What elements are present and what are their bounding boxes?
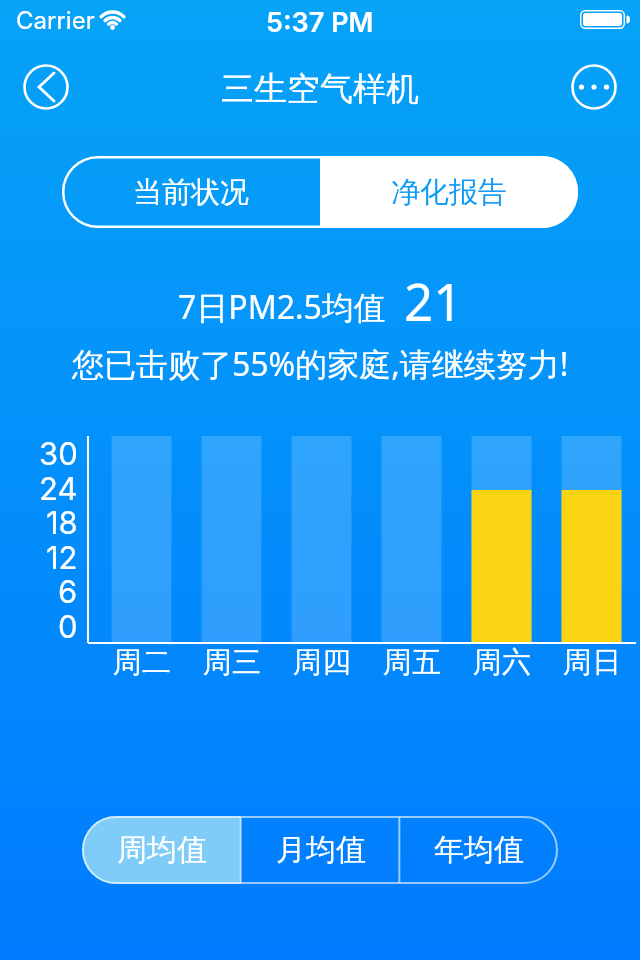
staticText: 您已击败了55%的家庭,请继续努力!: [72, 342, 569, 386]
staticText: 24: [39, 470, 78, 508]
button[interactable]: 净化报告: [320, 156, 578, 228]
staticText: 18: [46, 504, 78, 542]
staticText: 月均值: [276, 831, 366, 869]
staticText: 周三: [203, 644, 261, 681]
staticText: 12: [46, 539, 78, 577]
button[interactable]: 月均值: [241, 816, 400, 884]
staticText: 周四: [293, 644, 351, 681]
staticText: 净化报告: [391, 174, 507, 211]
staticText: 周六: [473, 644, 531, 681]
staticText: 6: [58, 573, 78, 611]
staticText: 7日PM2.5均值: [178, 285, 386, 329]
staticText: 周均值: [117, 831, 207, 869]
button[interactable]: 周均值: [82, 816, 241, 884]
staticText: 当前状况: [133, 174, 249, 211]
staticText: 5:37 PM: [266, 6, 374, 39]
staticText: 年均值: [434, 831, 524, 869]
staticText: 周五: [383, 644, 441, 681]
staticText: 周日: [563, 644, 621, 681]
staticText: 30: [39, 435, 78, 473]
button[interactable]: [22, 63, 70, 111]
staticText: Carrier: [16, 6, 95, 35]
staticText: 0: [58, 608, 78, 646]
staticText: 周二: [113, 644, 171, 681]
button[interactable]: 年均值: [399, 816, 558, 884]
staticText: 三生空气样机: [221, 68, 419, 110]
button[interactable]: 当前状况: [62, 156, 320, 228]
button[interactable]: [570, 63, 618, 111]
staticText: 21: [404, 266, 463, 335]
